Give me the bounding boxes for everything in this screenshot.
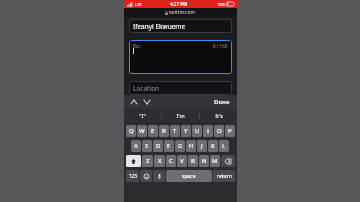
button[interactable]: Dictation xyxy=(153,170,165,182)
button[interactable]: L xyxy=(219,140,229,152)
staticText: Location xyxy=(133,84,160,93)
button[interactable]: R xyxy=(159,125,169,137)
staticText: B xyxy=(191,157,195,165)
button[interactable]: I'm xyxy=(162,109,199,122)
staticText: Y xyxy=(184,127,188,135)
button[interactable]: W xyxy=(137,125,147,137)
button[interactable]: B xyxy=(188,155,198,167)
button[interactable]: V xyxy=(177,155,187,167)
button[interactable]: F xyxy=(164,140,174,152)
button[interactable]: A xyxy=(131,140,141,152)
staticText: T xyxy=(173,127,177,135)
button[interactable]: Emoji xyxy=(140,170,152,182)
staticText: N xyxy=(202,157,207,165)
staticText: Bio xyxy=(133,43,140,49)
button[interactable]: P xyxy=(225,125,235,137)
staticText: 4:27 PM xyxy=(170,1,188,7)
button[interactable]: Address bar twitter.com xyxy=(124,8,237,17)
staticText: P xyxy=(228,127,232,135)
staticText: F xyxy=(167,142,171,150)
staticText: R xyxy=(162,127,166,135)
staticText: It's xyxy=(215,112,223,119)
button[interactable]: X xyxy=(154,155,165,167)
button[interactable]: O xyxy=(214,125,224,137)
staticText: Done xyxy=(214,98,230,106)
staticText: U xyxy=(195,127,200,135)
staticText: H xyxy=(189,142,194,150)
button[interactable]: D xyxy=(153,140,163,152)
staticText: G xyxy=(178,142,183,150)
button[interactable]: Previous field xyxy=(129,97,139,107)
staticText: space xyxy=(182,173,196,180)
staticText: O xyxy=(217,127,222,135)
staticText: Ifeanyi Ekwueme xyxy=(133,22,186,31)
button[interactable]: G xyxy=(175,140,185,152)
button[interactable]: E xyxy=(148,125,158,137)
button[interactable]: Shift xyxy=(126,155,141,167)
button[interactable]: Location xyxy=(129,81,232,95)
button[interactable]: Y xyxy=(181,125,191,137)
button[interactable]: U xyxy=(192,125,202,137)
staticText: L xyxy=(222,142,226,150)
button[interactable]: It's xyxy=(200,109,237,122)
button[interactable]: S xyxy=(142,140,152,152)
button[interactable]: "I" xyxy=(124,109,161,122)
button[interactable]: T xyxy=(170,125,180,137)
staticText: J xyxy=(201,142,203,150)
staticText: 0 / 160 xyxy=(213,43,228,49)
button[interactable]: return xyxy=(213,170,235,182)
button[interactable]: Done xyxy=(212,96,232,108)
staticText: "I" xyxy=(139,112,146,119)
button[interactable]: M xyxy=(210,155,220,167)
button[interactable]: space xyxy=(166,170,212,182)
staticText: D xyxy=(156,142,161,150)
button[interactable]: K xyxy=(208,140,218,152)
button[interactable]: Q xyxy=(126,125,136,137)
staticText: A xyxy=(134,142,138,150)
staticText: M xyxy=(212,157,218,165)
button[interactable]: N xyxy=(199,155,209,167)
button[interactable]: Bio xyxy=(129,40,232,74)
staticText: 123 xyxy=(129,173,137,179)
staticText: W xyxy=(139,127,145,135)
button[interactable]: J xyxy=(197,140,207,152)
button[interactable]: Backspace xyxy=(221,155,235,167)
staticText: Q xyxy=(129,127,134,135)
button[interactable]: I xyxy=(203,125,213,137)
staticText: K xyxy=(211,142,215,150)
staticText: C xyxy=(169,157,173,165)
staticText: LTE xyxy=(135,2,142,7)
button[interactable]: Next field xyxy=(142,97,152,107)
button[interactable]: 123 xyxy=(126,170,139,182)
staticText: return xyxy=(217,173,232,180)
button[interactable]: Z xyxy=(142,155,153,167)
staticText: Z xyxy=(146,157,150,165)
button[interactable]: C xyxy=(166,155,176,167)
button[interactable]: H xyxy=(186,140,196,152)
staticText: S xyxy=(145,142,149,150)
staticText: V xyxy=(180,157,184,165)
button[interactable]: Ifeanyi Ekwueme xyxy=(129,19,232,33)
staticText: twitter.com xyxy=(169,9,196,16)
staticText: I'm xyxy=(176,112,185,119)
staticText: E xyxy=(151,127,155,135)
staticText: 13% xyxy=(217,2,225,7)
staticText: I xyxy=(207,127,210,135)
staticText: X xyxy=(158,157,162,165)
